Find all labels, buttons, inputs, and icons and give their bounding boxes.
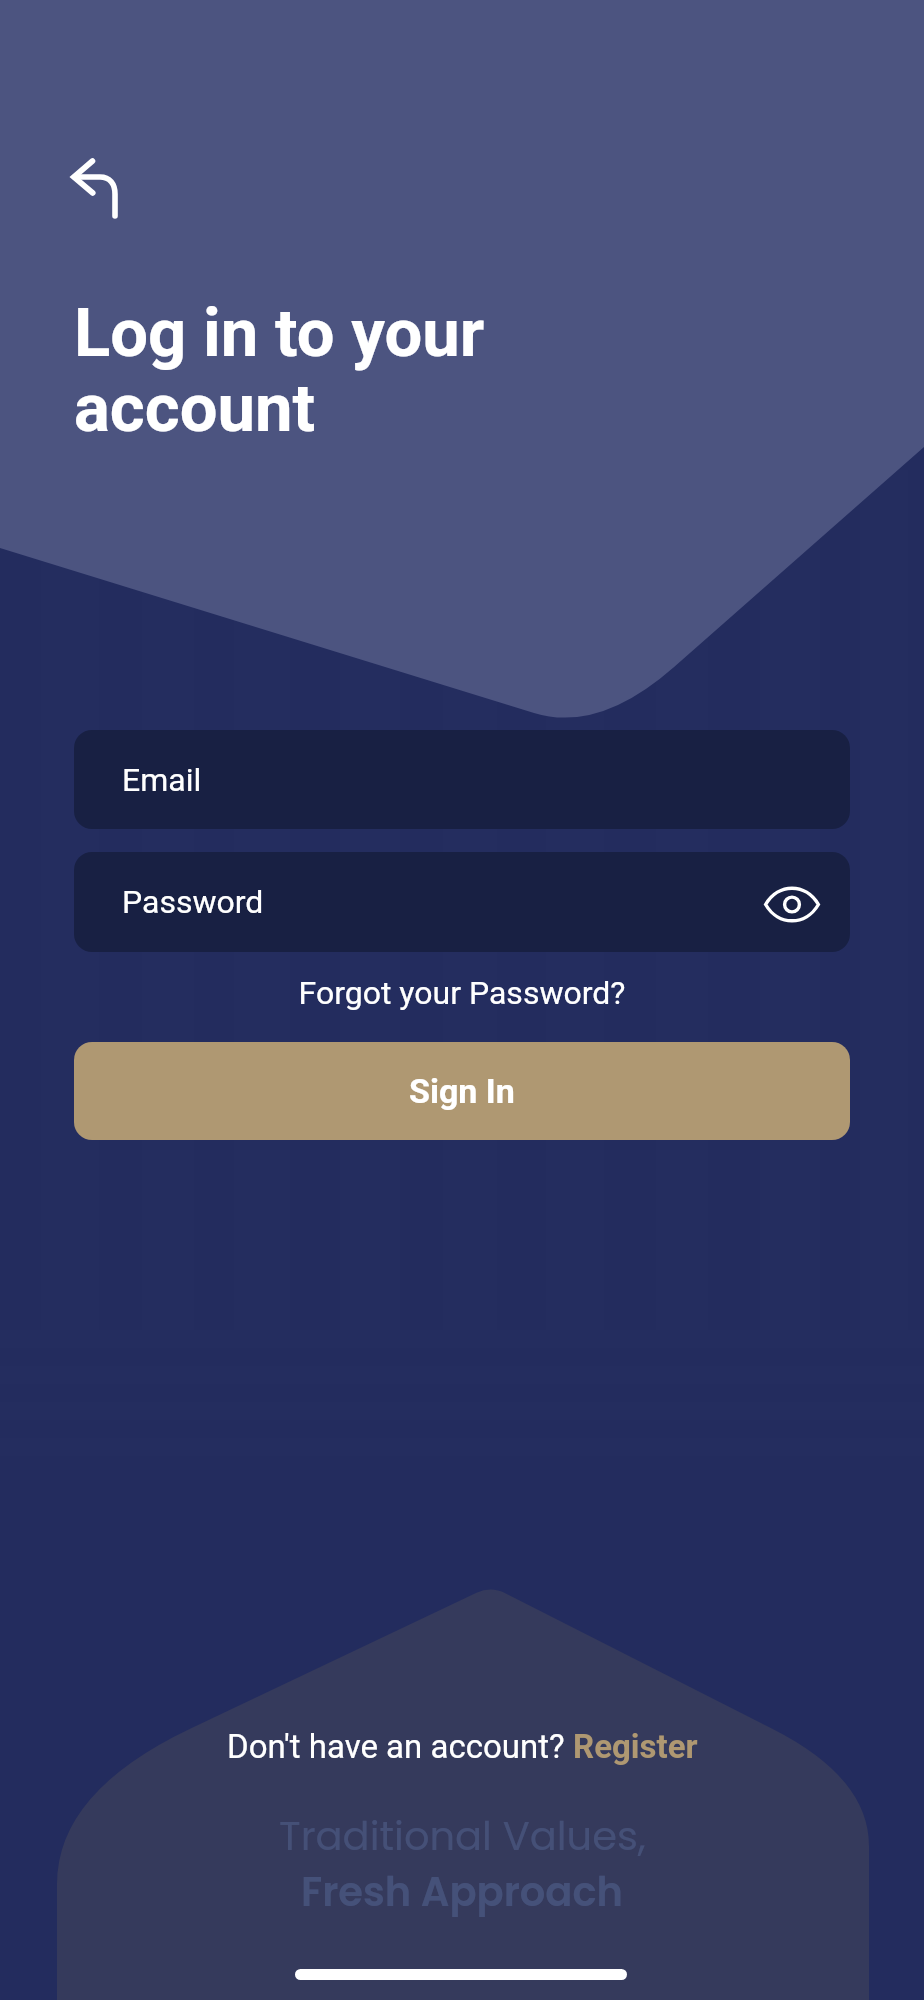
staticText: Log in to your account [74,294,485,447]
staticText: Don't have an account? [227,1727,573,1766]
button[interactable]: Show password [758,868,826,936]
staticText: Traditional Values, [279,1808,646,1864]
staticText: Email [122,761,202,799]
staticText: Password [122,883,264,921]
button[interactable]: Email [74,730,850,829]
button[interactable]: Back [52,142,136,226]
staticText: Register [573,1727,698,1766]
staticText: Sign In [409,1071,515,1111]
staticText: Fresh Approach [301,1864,623,1920]
button[interactable]: Forgot your Password? [74,974,850,1012]
button[interactable]: Don't have an account? [227,1727,698,1766]
button[interactable]: Password [74,852,850,952]
button[interactable]: Sign In [74,1042,850,1140]
